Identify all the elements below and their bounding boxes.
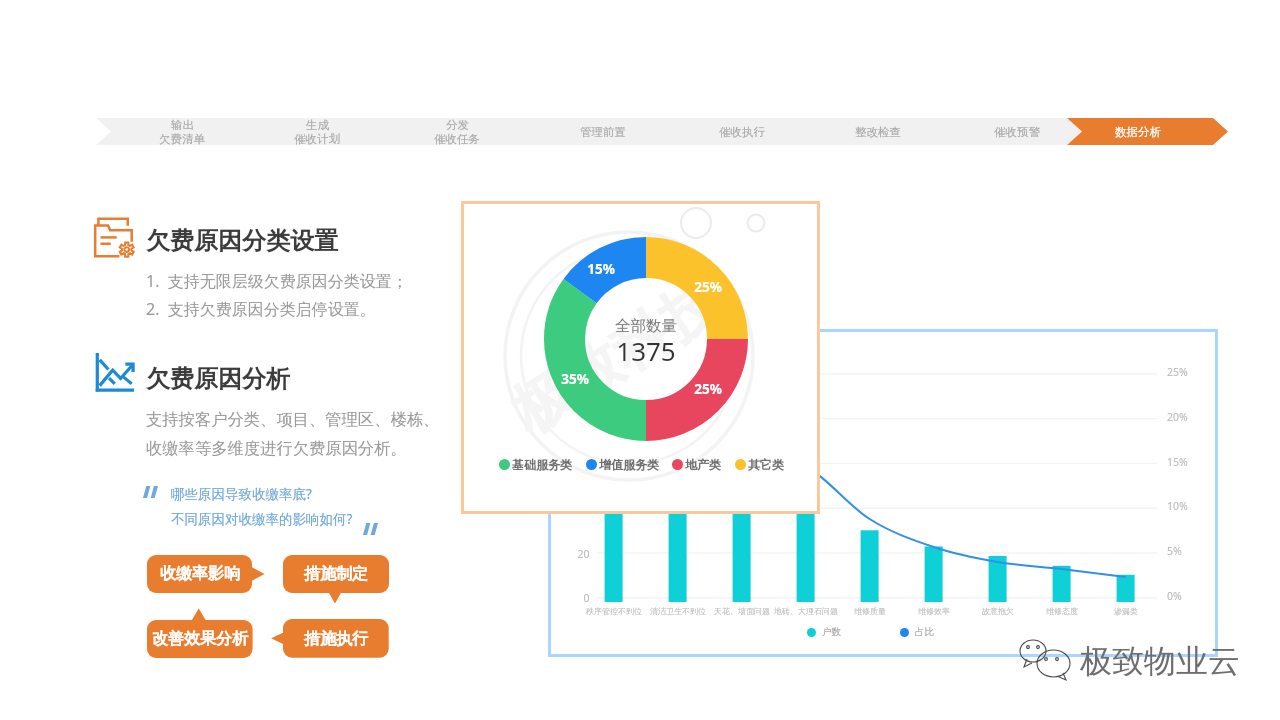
button[interactable]: 催收预警 xyxy=(957,118,1077,145)
staticText: 户数 xyxy=(822,626,841,638)
staticText: 措施制定 xyxy=(304,564,368,584)
staticText: 35% xyxy=(561,370,589,388)
staticText: 2. 支持欠费原因分类启停设置。 xyxy=(146,298,376,320)
staticText: 渗漏类 xyxy=(1114,606,1138,616)
staticText: 输出 xyxy=(171,118,194,132)
button[interactable]: 分发 xyxy=(397,118,517,145)
staticText: 1375 xyxy=(616,333,676,367)
staticText: 15% xyxy=(587,260,615,278)
staticText: 清洁卫生不到位 xyxy=(650,606,706,616)
button[interactable]: 地产类 xyxy=(672,457,721,472)
staticText: 生成 xyxy=(306,118,329,132)
staticText: 天花、墙面问题 xyxy=(714,606,770,616)
other: 微信公众号 xyxy=(1019,639,1072,683)
staticText: 1. 支持无限层级欠费原因分类设置； xyxy=(146,270,408,292)
staticText: 基础服务类 xyxy=(512,457,572,472)
staticText: 支持按客户分类、项目、管理区、楼栋、 收缴率等多维度进行欠费原因分析。 xyxy=(146,409,440,459)
staticText: 催收预警 xyxy=(994,125,1040,139)
staticText: 秩序管控不到位 xyxy=(586,606,642,616)
button[interactable]: 改善效果分析 xyxy=(131,604,269,674)
button[interactable]: 数据分析 xyxy=(1078,118,1198,145)
button[interactable]: 整改检查 xyxy=(818,118,938,145)
button[interactable]: 其它类 xyxy=(735,457,784,472)
staticText: 管理前置 xyxy=(580,125,626,139)
staticText: 5% xyxy=(1167,544,1182,558)
staticText: 措施执行 xyxy=(304,629,368,649)
button[interactable]: 措施制定 xyxy=(267,539,405,609)
button[interactable]: 措施执行 xyxy=(267,603,405,674)
button[interactable]: 欠费原因分类设置 xyxy=(95,219,134,258)
staticText: 欠费原因分类设置 xyxy=(146,226,338,256)
button[interactable]: 微信公众号 xyxy=(1019,639,1240,683)
staticText: 不同原因对收缴率的影响如何? xyxy=(171,510,353,528)
staticText: 25% xyxy=(1167,365,1188,379)
staticText: 其它类 xyxy=(748,457,784,472)
staticText: 20% xyxy=(1167,410,1188,424)
staticText: 地砖、大理石问题 xyxy=(774,606,838,616)
button[interactable]: 基础服务类 xyxy=(499,457,572,472)
staticText: 哪些原因导致收缴率底? xyxy=(171,485,312,503)
staticText: 催收计划 xyxy=(294,132,340,145)
staticText: 数据分析 xyxy=(1115,125,1161,139)
staticText: 极致科技 xyxy=(498,264,734,449)
staticText: 0 xyxy=(583,591,590,605)
staticText: 极致物业云 xyxy=(1080,641,1240,681)
staticText: 10% xyxy=(1167,499,1188,513)
button[interactable]: 生成 xyxy=(257,118,377,145)
staticText: 收缴率影响 xyxy=(160,564,240,584)
staticText: 增值服务类 xyxy=(599,457,659,472)
staticText: 占比 xyxy=(915,626,934,638)
staticText: 0% xyxy=(1167,589,1182,603)
staticText: 20 xyxy=(577,547,590,561)
staticText: 25% xyxy=(694,380,722,398)
button[interactable]: 增值服务类 xyxy=(586,457,659,472)
staticText: 全部数量 xyxy=(615,316,677,336)
button[interactable]: 管理前置 xyxy=(543,118,663,145)
button[interactable]: 欠费原因分析 xyxy=(95,353,134,392)
button[interactable]: 催收执行 xyxy=(682,118,802,145)
staticText: 故意拖欠 xyxy=(982,606,1014,616)
staticText: 维修效率 xyxy=(918,606,950,616)
staticText: 15% xyxy=(1167,455,1188,469)
staticText: 维修态度 xyxy=(1046,606,1078,616)
staticText: 欠费原因分析 xyxy=(146,364,290,394)
staticText: 欠费清单 xyxy=(159,132,205,145)
staticText: 整改检查 xyxy=(855,125,901,139)
staticText: 催收执行 xyxy=(719,125,765,139)
staticText: 催收任务 xyxy=(434,132,480,145)
staticText: 25% xyxy=(694,278,722,296)
staticText: 分发 xyxy=(446,118,469,132)
button[interactable]: 占比 xyxy=(900,626,934,638)
staticText: 地产类 xyxy=(685,457,721,472)
staticText: 维修质量 xyxy=(854,606,886,616)
button[interactable]: 输出 xyxy=(122,118,242,145)
button[interactable]: 收缴率影响 xyxy=(131,539,268,609)
button[interactable]: 户数 xyxy=(807,626,841,638)
staticText: 改善效果分析 xyxy=(152,629,248,649)
